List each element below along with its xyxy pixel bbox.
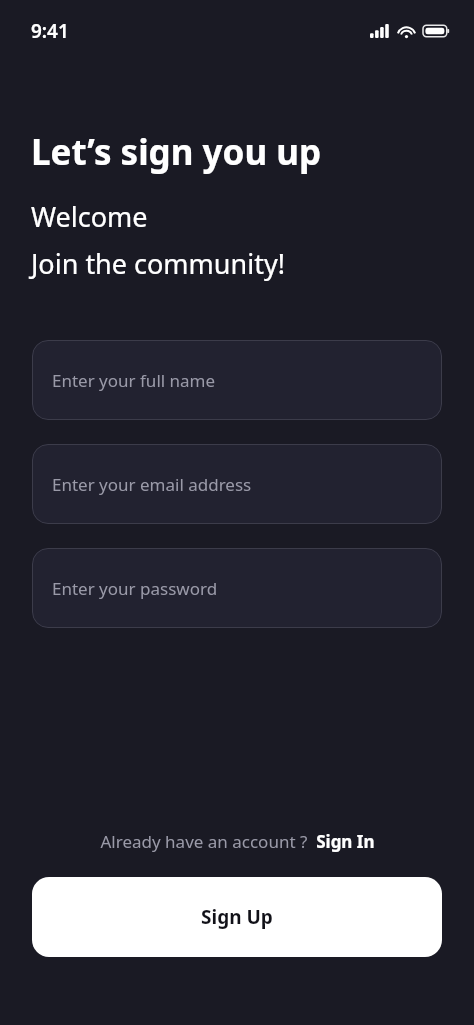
staticText: Join the community! [31, 245, 285, 282]
other: Wi-Fi [397, 24, 416, 38]
button[interactable]: Enter your email address [32, 444, 442, 524]
staticText: Welcome [31, 198, 148, 235]
button[interactable]: Enter your full name [32, 340, 442, 420]
staticText: Enter your email address [52, 473, 252, 496]
staticText: 9:41 [31, 18, 69, 44]
staticText: Sign Up [201, 904, 273, 930]
button[interactable]: Sign Up [32, 877, 442, 957]
button[interactable]: Already have an account ? Sign In [0, 830, 474, 853]
staticText: Already have an account ? Sign In [100, 830, 375, 853]
staticText: Enter your password [52, 577, 218, 600]
staticText: Enter your full name [52, 369, 216, 392]
staticText: Let’s sign you up [31, 128, 322, 176]
button[interactable]: Enter your password [32, 548, 442, 628]
other: Battery [423, 24, 450, 38]
other: Cellular signal [370, 24, 390, 38]
